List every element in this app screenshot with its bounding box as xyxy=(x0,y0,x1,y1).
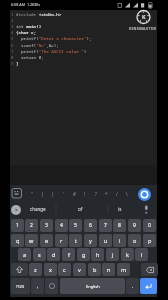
button[interactable]: b xyxy=(88,263,101,276)
staticText: a xyxy=(23,251,27,258)
staticText: i xyxy=(119,237,121,244)
button[interactable]: 5 xyxy=(69,219,82,232)
button[interactable]: / xyxy=(116,191,118,197)
button[interactable]: y xyxy=(84,234,97,247)
staticText: z xyxy=(34,266,37,273)
button[interactable]: 9 xyxy=(128,219,141,232)
staticText: j xyxy=(112,251,114,258)
staticText: b xyxy=(93,266,97,273)
staticText: 9 xyxy=(133,222,136,229)
staticText: l xyxy=(141,251,143,258)
button[interactable]: j xyxy=(106,248,119,261)
button[interactable]: 3 xyxy=(40,219,53,232)
button[interactable]: \ xyxy=(126,191,128,197)
staticText: 1 xyxy=(16,222,19,229)
button[interactable]: 8 xyxy=(113,219,126,232)
button[interactable]: o xyxy=(128,234,141,247)
staticText: 7 xyxy=(104,222,107,229)
button[interactable] xyxy=(138,188,151,201)
button[interactable]: change xyxy=(30,206,46,212)
staticText: 6 xyxy=(89,222,92,229)
button[interactable]: p xyxy=(143,234,156,247)
staticText: m xyxy=(121,266,127,273)
button[interactable]: 0 xyxy=(143,219,156,232)
staticText: 2 xyxy=(11,18,14,24)
staticText: 6 scanf("%c",&c); xyxy=(11,43,59,49)
button[interactable]: 7 xyxy=(99,219,112,232)
button[interactable]: c xyxy=(58,263,71,276)
button[interactable]: q xyxy=(11,234,24,247)
staticText: h xyxy=(96,251,100,258)
staticText: x xyxy=(49,266,52,273)
button[interactable]: z xyxy=(29,263,42,276)
button[interactable] xyxy=(140,278,157,294)
button[interactable]: is xyxy=(118,206,122,212)
button[interactable]: > xyxy=(11,205,21,215)
staticText: , xyxy=(37,283,39,290)
staticText: t xyxy=(75,237,77,244)
button[interactable]: ?123 xyxy=(11,278,30,294)
button[interactable]: ' xyxy=(63,191,64,197)
button[interactable]: m xyxy=(117,263,130,276)
button[interactable]: i xyxy=(113,234,126,247)
staticText: 6:58 AM 1.2KB/s xyxy=(11,2,40,7)
button[interactable] xyxy=(10,187,22,199)
button[interactable]: . xyxy=(126,278,139,294)
button[interactable]: English xyxy=(60,278,125,294)
staticText: r xyxy=(60,237,63,244)
button[interactable]: " xyxy=(31,191,33,197)
button[interactable]: n xyxy=(102,263,115,276)
staticText: 2 xyxy=(30,222,33,229)
staticText: 8 return 0; xyxy=(11,55,44,61)
button[interactable]: * xyxy=(105,191,108,197)
button[interactable]: x xyxy=(44,263,57,276)
staticText: 9 } xyxy=(11,61,19,67)
button[interactable]: e xyxy=(40,234,53,247)
staticText: f xyxy=(68,251,70,258)
button[interactable]: l xyxy=(135,248,148,261)
button[interactable]: t xyxy=(69,234,82,247)
staticText: KINEMASTER xyxy=(129,26,157,31)
button[interactable]: d xyxy=(47,248,60,261)
staticText: 4 {char c; xyxy=(11,30,37,36)
button[interactable]: f xyxy=(62,248,75,261)
button[interactable]: ? xyxy=(95,191,97,197)
staticText: v xyxy=(78,266,81,273)
staticText: 3 int main() xyxy=(11,24,42,30)
staticText: 3 xyxy=(45,222,48,229)
staticText: y xyxy=(89,237,92,244)
staticText: > xyxy=(15,207,18,214)
staticText: p xyxy=(148,237,152,244)
button[interactable]: v xyxy=(73,263,86,276)
button[interactable]: r xyxy=(55,234,68,247)
staticText: 0 xyxy=(148,222,151,229)
button[interactable]: 1 xyxy=(11,219,24,232)
button[interactable] xyxy=(45,278,58,294)
button[interactable]: 2 xyxy=(25,219,38,232)
button[interactable]: g xyxy=(77,248,90,261)
button[interactable]: h xyxy=(91,248,104,261)
button[interactable] xyxy=(142,204,152,214)
button[interactable]: ( xyxy=(42,191,44,197)
button[interactable]: , xyxy=(31,278,44,294)
button[interactable] xyxy=(11,263,28,276)
staticText: English xyxy=(86,284,100,289)
button[interactable]: 6 xyxy=(84,219,97,232)
staticText: g xyxy=(82,251,86,258)
button[interactable]: s xyxy=(33,248,46,261)
button[interactable]: 4 xyxy=(55,219,68,232)
staticText: 5 xyxy=(74,222,77,229)
staticText: o xyxy=(133,237,137,244)
button[interactable]: ! xyxy=(84,191,86,197)
button[interactable]: ) xyxy=(52,191,54,197)
button[interactable]: of xyxy=(78,206,83,212)
staticText: 7 printf("The ASCII value ") xyxy=(11,49,87,55)
button[interactable]: w xyxy=(25,234,38,247)
button[interactable] xyxy=(141,263,158,276)
button[interactable]: a xyxy=(18,248,31,261)
button[interactable]: # xyxy=(73,191,76,197)
staticText: q xyxy=(16,237,20,244)
button[interactable]: k xyxy=(121,248,134,261)
button[interactable]: u xyxy=(99,234,112,247)
staticText: n xyxy=(107,266,111,273)
